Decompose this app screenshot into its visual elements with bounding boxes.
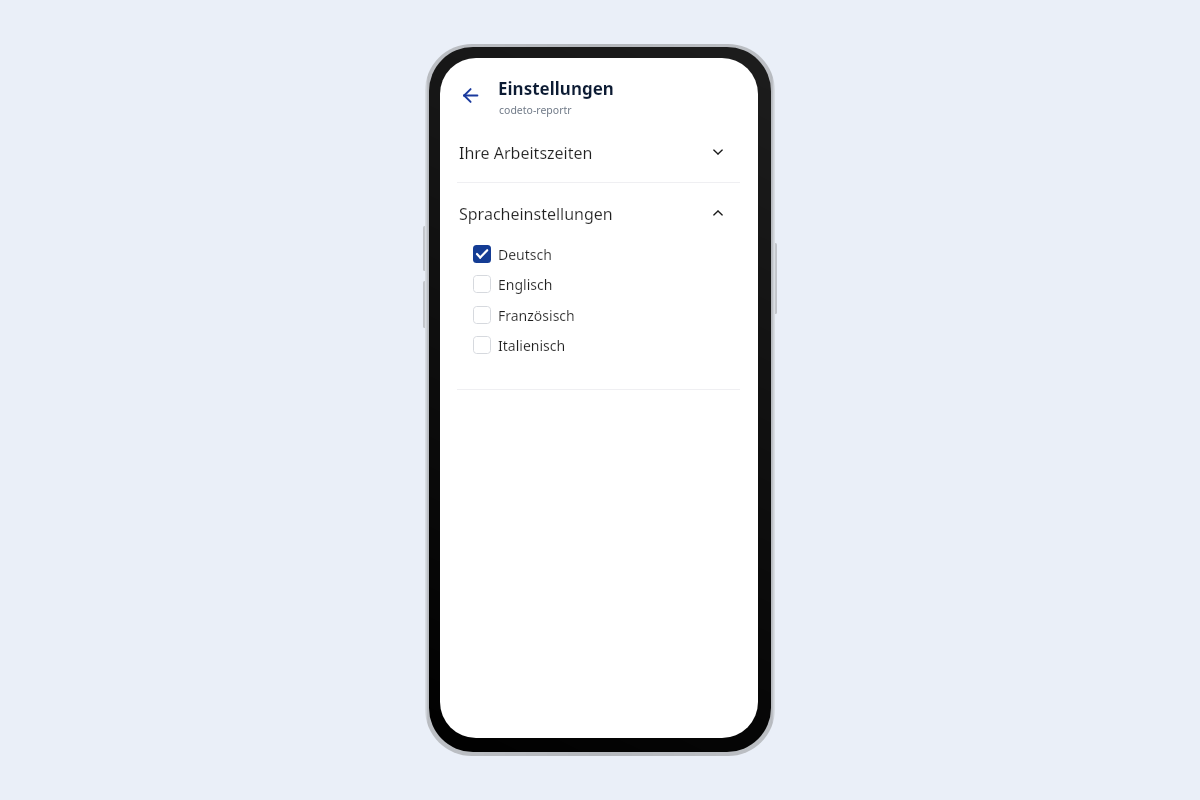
staticText: Deutsch <box>498 245 552 264</box>
staticText: Spracheinstellungen <box>459 203 613 225</box>
button[interactable]: Französisch <box>440 305 758 325</box>
button[interactable]: Deutsch <box>440 244 758 264</box>
button[interactable]: Italienisch <box>440 335 758 355</box>
button[interactable]: Englisch <box>440 274 758 294</box>
staticText: Ihre Arbeitszeiten <box>459 142 593 164</box>
staticText: codeto-reportr <box>499 103 572 117</box>
button[interactable]: Spracheinstellungen <box>440 202 758 226</box>
staticText: Französisch <box>498 306 575 325</box>
staticText: Einstellungen <box>498 77 614 100</box>
staticText: Englisch <box>498 275 553 294</box>
button[interactable]: Ihre Arbeitszeiten <box>440 141 758 165</box>
button[interactable]: Zurück <box>454 79 486 111</box>
staticText: Italienisch <box>498 336 566 355</box>
